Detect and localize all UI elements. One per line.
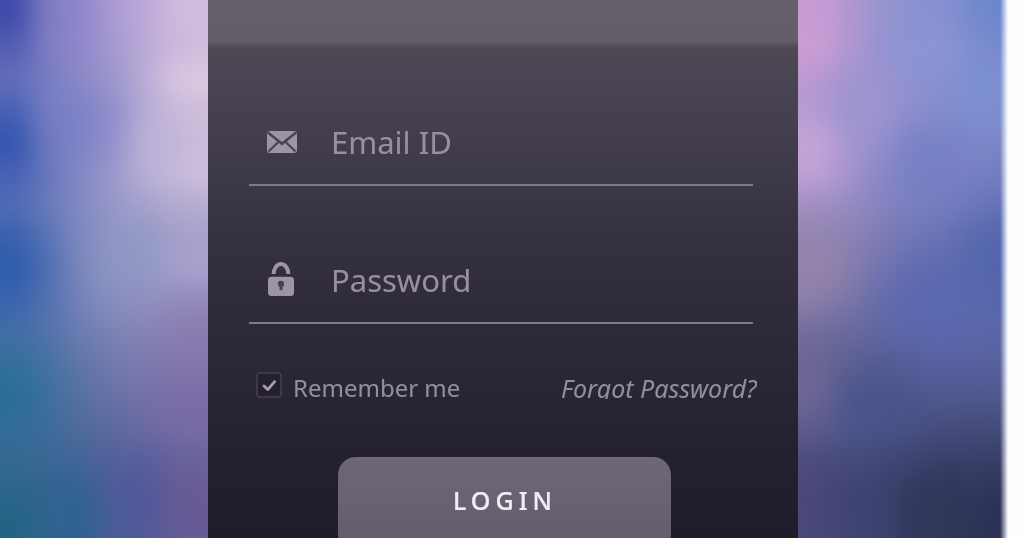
button[interactable]: Remember me <box>257 371 461 399</box>
staticText: Remember me <box>293 371 461 399</box>
staticText: LOGIN <box>453 483 557 517</box>
staticText: Forgot Password? <box>561 371 757 399</box>
button[interactable]: Email ID <box>249 118 753 188</box>
button[interactable]: LOGIN <box>338 457 671 538</box>
button[interactable]: Forgot Password? <box>561 371 757 399</box>
staticText: Email ID <box>331 121 452 163</box>
staticText: Password <box>331 259 472 301</box>
button[interactable]: Password <box>249 256 753 326</box>
